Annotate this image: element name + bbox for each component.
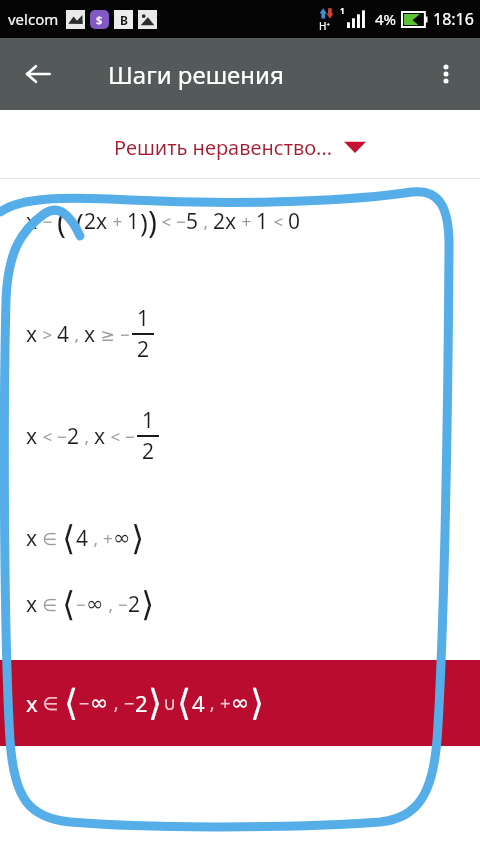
staticText: 2 — [128, 590, 141, 619]
staticText: x — [26, 590, 38, 619]
staticText: , — [89, 527, 103, 550]
staticText: ∞ — [86, 592, 104, 616]
staticText: B — [120, 12, 128, 28]
staticText: x — [26, 207, 38, 236]
staticText: 0 — [288, 207, 301, 236]
staticText: − — [120, 323, 130, 346]
staticText: ⟨ — [62, 584, 76, 624]
staticText: ⟩ — [141, 584, 155, 624]
staticText: 2 — [67, 422, 80, 451]
staticText: − — [79, 691, 90, 716]
staticText: 2x — [213, 207, 237, 236]
staticText: − — [125, 425, 135, 448]
staticText: < — [269, 210, 288, 233]
staticText: ⟨ — [64, 682, 79, 724]
staticText: < — [106, 425, 125, 448]
staticText: ∞ — [231, 690, 250, 716]
staticText: velcom — [8, 9, 59, 29]
staticText: 1 — [137, 304, 150, 333]
staticText: 1 — [142, 406, 155, 435]
staticText: 18:16 — [433, 8, 474, 30]
staticText: ( — [76, 204, 84, 239]
staticText: , — [104, 593, 118, 616]
staticText: − — [57, 425, 67, 448]
staticText: , — [80, 425, 94, 448]
staticText: ∈ — [38, 593, 62, 616]
staticText: $ — [96, 12, 103, 27]
button[interactable]: Back — [14, 50, 62, 98]
staticText: − — [118, 593, 128, 616]
staticText: − — [176, 210, 186, 233]
staticText: Решить неравенство... — [114, 134, 333, 161]
staticText: ∪ — [163, 693, 177, 714]
staticText: − — [124, 691, 135, 716]
staticText: < — [38, 425, 57, 448]
staticText: ∞ — [90, 690, 109, 716]
staticText: ∈ — [38, 691, 64, 716]
staticText: 1 — [127, 207, 140, 236]
staticText: 2 — [135, 688, 148, 718]
staticText: ∈ — [38, 527, 62, 550]
staticText: − — [76, 593, 86, 616]
staticText: + — [103, 527, 113, 550]
staticText: 4% — [375, 9, 397, 29]
staticText: x — [94, 422, 106, 451]
staticText: , — [70, 323, 84, 346]
staticText: ⟩ — [148, 682, 163, 724]
staticText: x — [26, 524, 38, 553]
staticText: ⟨ — [177, 682, 192, 724]
staticText: H⁺ — [319, 19, 330, 33]
button[interactable]: More options — [422, 50, 470, 98]
staticText: 2x — [84, 207, 108, 236]
staticText: + — [220, 691, 231, 716]
staticText: + — [237, 210, 256, 233]
staticText: 2 — [142, 437, 155, 466]
staticText: 5 — [186, 207, 199, 236]
staticText: Шаги решения — [108, 58, 284, 91]
staticText: ⟩ — [250, 682, 265, 724]
staticText: x — [84, 320, 96, 349]
staticText: ≥ — [96, 323, 120, 346]
staticText: ) — [140, 204, 148, 239]
staticText: − — [38, 210, 57, 233]
staticText: x — [26, 688, 38, 718]
staticText: − — [66, 210, 76, 233]
staticText: > — [38, 323, 57, 346]
staticText: x — [26, 422, 38, 451]
staticText: 4 — [76, 524, 89, 553]
staticText: ⟩ — [131, 518, 145, 558]
staticText: 2 — [137, 335, 150, 364]
staticText: , — [205, 691, 220, 716]
staticText: 1 — [340, 5, 345, 16]
staticText: ( — [57, 201, 66, 242]
staticText: ∞ — [113, 526, 131, 550]
staticText: 1 — [256, 207, 269, 236]
staticText: x — [26, 320, 38, 349]
staticText: 4 — [57, 320, 70, 349]
staticText: < — [157, 210, 176, 233]
staticText: , — [199, 210, 213, 233]
staticText: + — [108, 210, 127, 233]
button[interactable]: Решить неравенство... — [0, 127, 480, 167]
staticText: ⟨ — [62, 518, 76, 558]
staticText: , — [109, 691, 124, 716]
staticText: ) — [148, 201, 157, 242]
staticText: 4 — [192, 688, 205, 718]
